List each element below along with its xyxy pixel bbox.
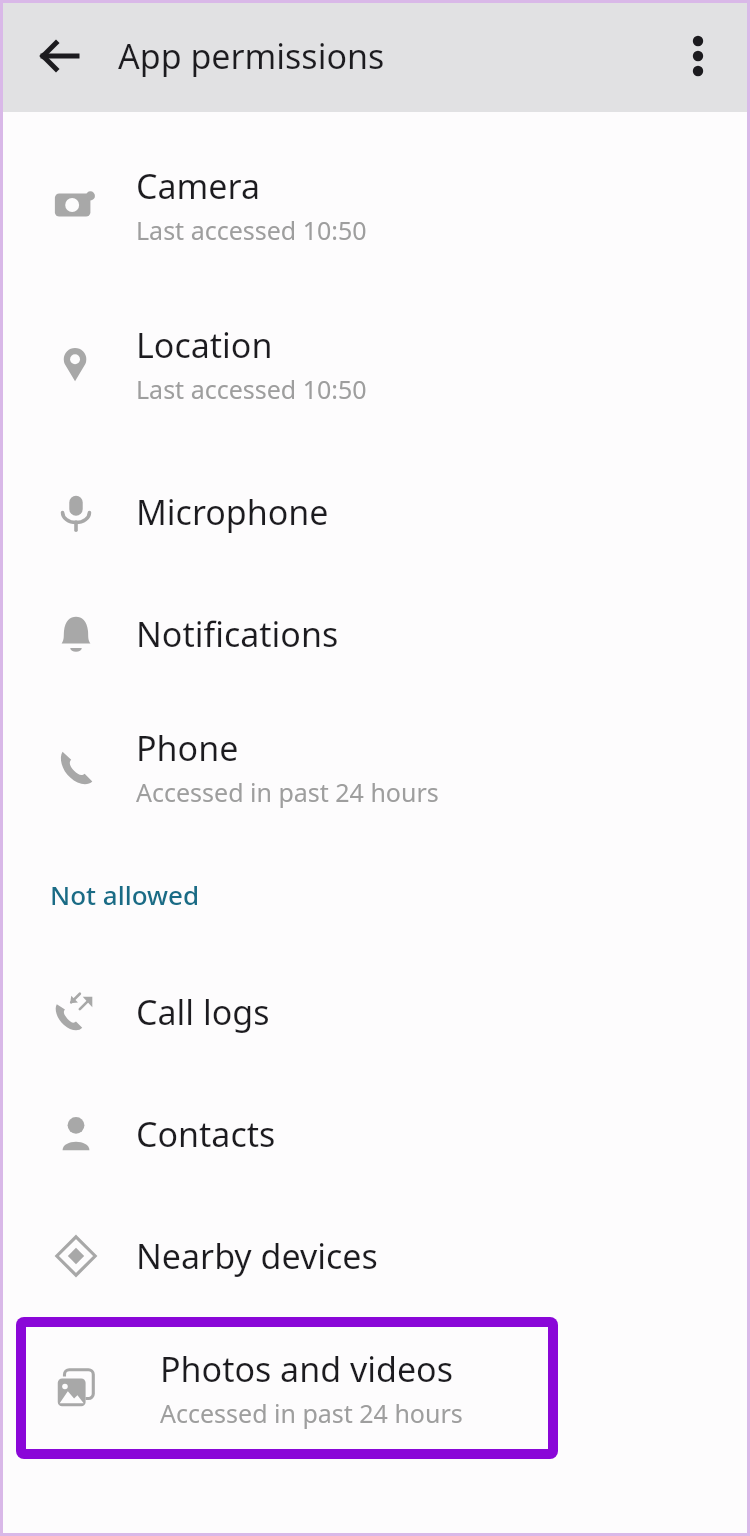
button[interactable]: Notifications: [0, 584, 750, 684]
staticText: Microphone: [136, 489, 329, 535]
button[interactable]: Contacts: [0, 1084, 750, 1184]
staticText: Location: [136, 322, 273, 368]
staticText: Not allowed: [50, 877, 200, 912]
button[interactable]: Phone: [0, 706, 750, 828]
staticText: App permissions: [118, 33, 385, 79]
staticText: Notifications: [136, 611, 339, 657]
button[interactable]: Nearby devices: [0, 1206, 750, 1306]
button[interactable]: Location: [0, 303, 750, 425]
button[interactable]: Photos and videos: [16, 1317, 558, 1459]
staticText: Phone: [136, 725, 239, 771]
staticText: Camera: [136, 163, 260, 209]
button[interactable]: Camera: [0, 144, 750, 266]
staticText: Accessed in past 24 hours: [136, 775, 439, 809]
staticText: Nearby devices: [136, 1233, 378, 1279]
staticText: Contacts: [136, 1111, 276, 1157]
staticText: Call logs: [136, 989, 270, 1035]
staticText: Last accessed 10:50: [136, 213, 367, 247]
button[interactable]: Call logs: [0, 962, 750, 1062]
button[interactable]: Microphone: [0, 462, 750, 562]
staticText: Last accessed 10:50: [136, 372, 367, 406]
staticText: Photos and videos: [160, 1346, 453, 1392]
button[interactable]: More options: [666, 24, 730, 88]
button[interactable]: Back: [28, 24, 92, 88]
staticText: Accessed in past 24 hours: [160, 1396, 463, 1430]
